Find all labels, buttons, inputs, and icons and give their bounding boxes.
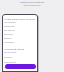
staticText: Lorem ipsum dolor sit amet [4,17,36,20]
staticText: eiusmod [4,33,13,36]
staticText: incididunt [4,41,15,44]
staticText: consectetur [4,21,17,24]
staticText: nostrud [4,56,13,59]
staticText: Ut enim ad minim [4,47,25,50]
staticText: amet consectetur [23,4,41,7]
staticText: veniam quis [4,51,17,54]
staticText: ullamco [4,66,13,69]
staticText: tempor [4,37,12,40]
staticText: LOREM IPSUM DOLOR [20,1,44,4]
staticText: exercitation [4,61,17,64]
staticText: elit sed do [4,29,15,32]
staticText: adipiscing [4,25,15,28]
button[interactable]: Continue [5,64,36,69]
